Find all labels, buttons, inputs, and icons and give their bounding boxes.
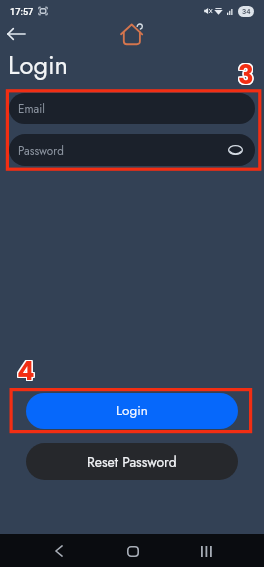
staticText: 3 [238,57,254,93]
staticText: 3 [239,58,255,94]
staticText: Login [8,47,68,84]
staticText: Email [18,100,45,117]
button[interactable]: Password [9,134,255,166]
staticText: 4 [18,352,36,388]
staticText: 17:57 [10,6,34,17]
staticText: 4 [17,353,35,389]
staticText: 4 [16,352,34,388]
button[interactable]: Back [44,536,74,566]
staticText: Reset Password [87,452,177,472]
staticText: 3 [237,56,253,92]
button[interactable]: Back [2,22,30,46]
button[interactable]: Reset Password [26,443,238,480]
button[interactable]: Home [118,536,148,566]
staticText: 4 [17,352,35,388]
staticText: 3 [238,58,254,94]
staticText: 4 [18,353,36,389]
staticText: Login [116,401,148,421]
staticText: 3 [237,57,253,93]
staticText: 4 [16,354,34,390]
staticText: 3 [237,58,253,94]
button[interactable]: Recent apps [191,536,221,566]
button[interactable]: Show password [224,139,246,160]
staticText: 4 [18,354,36,390]
staticText: 34 [242,7,251,16]
staticText: 3 [238,56,254,92]
staticText: 4 [16,353,34,389]
button[interactable]: Login [26,393,238,429]
staticText: 4 [17,354,35,390]
staticText: 3 [239,56,255,92]
button[interactable]: Email [9,93,255,124]
staticText: 3 [239,57,255,93]
staticText: Password [18,142,64,159]
